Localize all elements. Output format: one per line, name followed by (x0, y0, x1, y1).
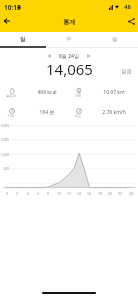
staticText: 6 (33, 191, 43, 196)
staticText: 10.97 km (92, 89, 136, 96)
staticText: 0 (2, 191, 12, 196)
staticText: 18 (95, 191, 105, 196)
button[interactable]: 속도 (67, 104, 136, 124)
button[interactable]: 시간 (0, 104, 69, 124)
staticText: 8월 24일 (59, 53, 79, 60)
button[interactable]: 일 (0, 32, 46, 48)
button[interactable]: 월 (92, 32, 138, 48)
staticText: 2,000 (0, 138, 9, 142)
staticText: 2 (12, 191, 22, 196)
staticText: 468 kcal (25, 89, 69, 96)
staticText: 주 (66, 36, 72, 43)
staticText: 500 (0, 167, 9, 171)
staticText: 걸음 (121, 68, 132, 75)
staticText: 22 (115, 191, 125, 196)
staticText: 거리 (71, 94, 85, 98)
staticText: 8 (43, 191, 53, 196)
staticText: 164 분 (25, 109, 69, 116)
staticText: 14 (74, 191, 84, 196)
staticText: 3,000 (0, 124, 9, 128)
staticText: 칼로리 (4, 94, 18, 98)
staticText: 일 (20, 36, 26, 43)
staticText: 14,065 (46, 59, 93, 77)
staticText: 10 (54, 191, 64, 196)
staticText: 24 (126, 191, 136, 196)
staticText: 12 (64, 191, 74, 196)
staticText: 4 (23, 191, 33, 196)
staticText: 2.78 km/h (92, 109, 136, 116)
button[interactable]: Share (124, 14, 138, 28)
staticText: 속도 (71, 114, 85, 118)
button[interactable]: 주 (46, 32, 92, 48)
staticText: 48 (124, 3, 131, 11)
staticText: 16 (84, 191, 94, 196)
staticText: 10:13 (4, 3, 21, 12)
staticText: 시간 (4, 114, 18, 118)
button[interactable]: 거리 (67, 84, 136, 104)
button[interactable]: Back (0, 14, 14, 28)
button[interactable]: Next day (84, 51, 94, 61)
staticText: 월 (112, 36, 118, 43)
staticText: 1,000 (0, 153, 9, 157)
staticText: 통계 (63, 18, 76, 26)
button[interactable]: Previous day (44, 51, 54, 61)
staticText: 20 (105, 191, 115, 196)
button[interactable]: 칼로리 (0, 84, 69, 104)
